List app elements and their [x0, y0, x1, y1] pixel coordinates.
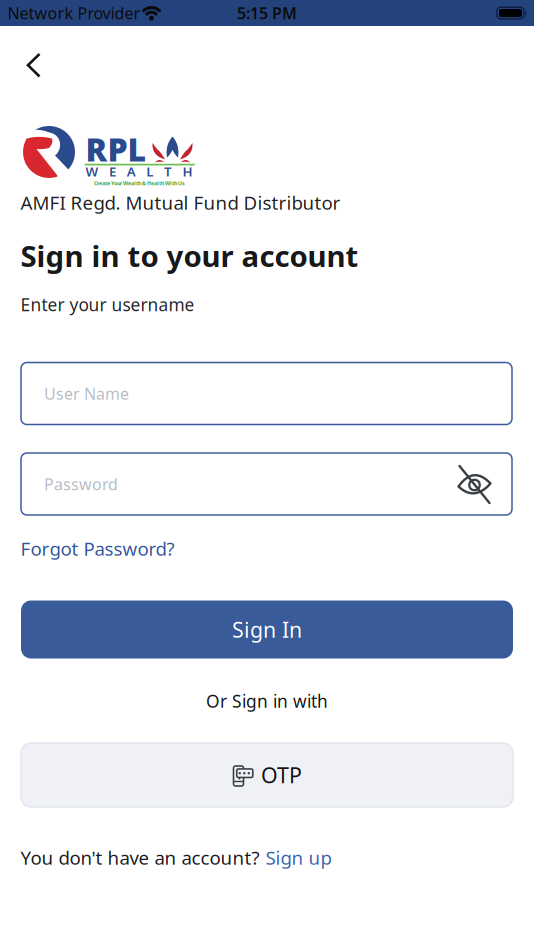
staticText: T: [164, 162, 172, 180]
staticText: Create Your Wealth & Health With Us: [94, 180, 185, 187]
staticText: Forgot Password?: [20, 536, 174, 561]
staticText: A: [127, 162, 136, 180]
staticText: H: [182, 162, 192, 180]
staticText: Sign In: [232, 615, 302, 644]
staticText: User Name: [44, 383, 129, 404]
button[interactable]: Back: [11, 42, 55, 86]
staticText: Sign up: [265, 845, 331, 870]
staticText: You don't have an account?: [20, 845, 259, 870]
staticText: Sign in to your account: [20, 236, 358, 275]
staticText: Enter your username: [20, 293, 194, 316]
button[interactable]: Sign In: [21, 600, 513, 658]
staticText: E: [109, 162, 116, 180]
staticText: Network Provider: [7, 2, 140, 24]
button[interactable]: Sign up: [265, 845, 331, 870]
staticText: L: [146, 162, 153, 180]
staticText: W: [85, 162, 98, 180]
button[interactable]: OTP: [21, 743, 513, 807]
button[interactable]: Show password: [456, 465, 492, 503]
staticText: RPL: [85, 128, 146, 170]
staticText: AMFI Regd. Mutual Fund Distributor: [20, 190, 340, 215]
staticText: Or Sign in with: [206, 689, 328, 712]
staticText: OTP: [261, 761, 302, 789]
staticText: 5:15 PM: [237, 2, 297, 24]
staticText: Password: [44, 473, 118, 495]
button[interactable]: Forgot Password?: [20, 536, 174, 561]
